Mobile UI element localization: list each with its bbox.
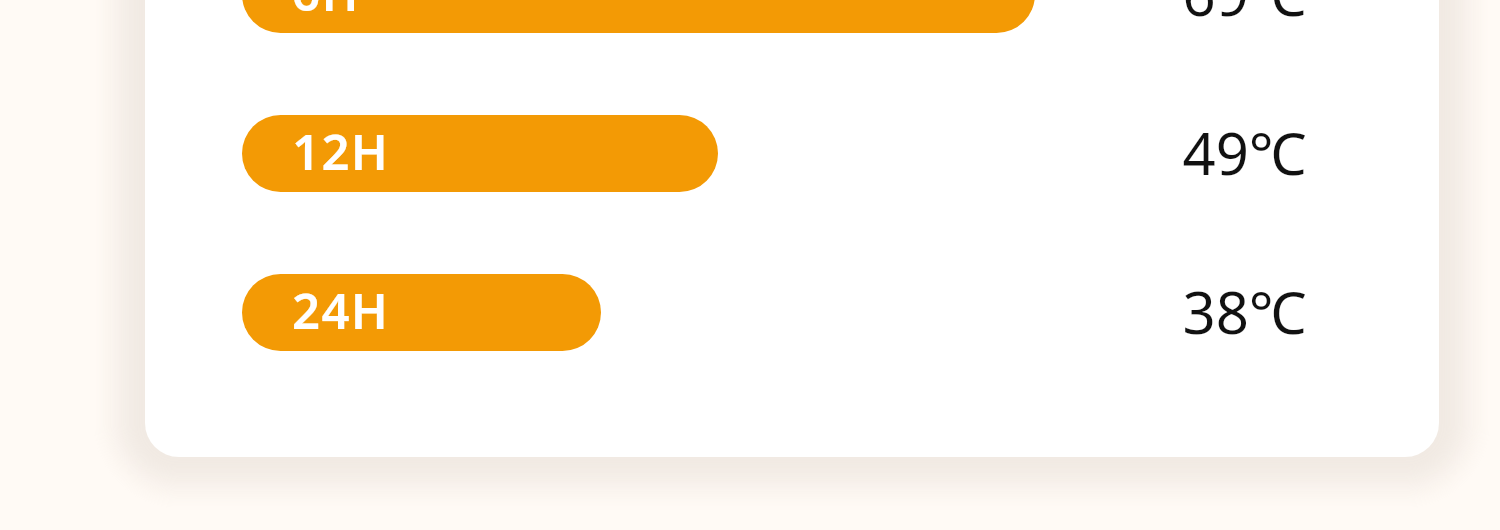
button[interactable]: 24H (242, 274, 1334, 351)
staticText: 6H (292, 0, 360, 26)
button[interactable]: 12H (242, 115, 1334, 192)
button[interactable]: 6H (242, 0, 1334, 33)
staticText: 24H (292, 277, 390, 344)
staticText: 12H (292, 118, 390, 185)
staticText: 69℃ (1182, 0, 1307, 31)
staticText: 38℃ (1182, 272, 1307, 349)
staticText: 49℃ (1182, 113, 1307, 190)
